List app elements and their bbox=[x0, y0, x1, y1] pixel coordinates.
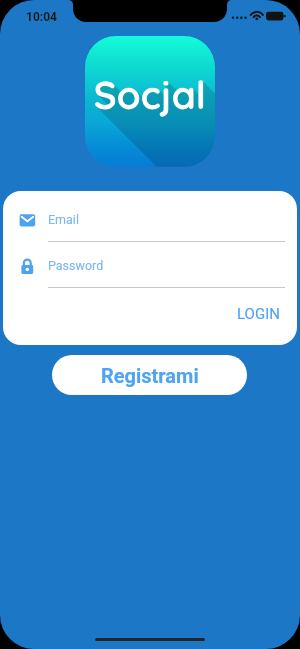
button[interactable]: Password bbox=[3, 254, 297, 294]
staticText: 10:04 bbox=[26, 10, 57, 24]
staticText: Password bbox=[48, 258, 104, 273]
button[interactable]: Email bbox=[3, 208, 297, 248]
staticText: Email bbox=[48, 212, 79, 227]
button[interactable]: LOGIN bbox=[225, 299, 291, 329]
staticText: Registrami bbox=[101, 364, 199, 387]
staticText: LOGIN bbox=[237, 305, 280, 323]
other: Password bbox=[19, 258, 36, 275]
other: Email bbox=[19, 212, 36, 229]
button[interactable]: Registrami bbox=[52, 355, 247, 395]
